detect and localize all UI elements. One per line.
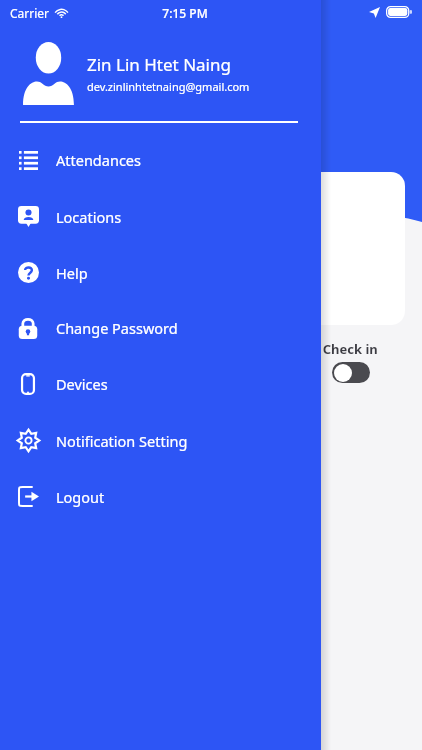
button[interactable]: Logout — [0, 468, 321, 524]
staticText: Notification Setting — [56, 431, 188, 451]
staticText: Zin Lin Htet Naing — [87, 53, 231, 76]
staticText: Help — [56, 263, 88, 283]
staticText: 7:15 PM — [162, 5, 208, 21]
button[interactable]: Help — [0, 244, 321, 300]
button[interactable] — [214, 172, 405, 325]
staticText: Attendances — [56, 150, 141, 170]
button[interactable]: Devices — [0, 356, 321, 412]
staticText: dev.zinlinhtetnaing@gmail.com — [87, 79, 250, 94]
button[interactable]: Zin Lin Htet Naing — [22, 42, 321, 105]
staticText: Carrier — [10, 5, 50, 21]
staticText: Locations — [56, 207, 122, 227]
button[interactable]: Attendances — [0, 132, 321, 188]
staticText: Change Password — [56, 318, 178, 338]
button[interactable]: Change Password — [0, 300, 321, 356]
button[interactable]: Enable Check in toggle — [332, 362, 370, 383]
staticText: Logout — [56, 487, 105, 507]
staticText: Devices — [56, 374, 108, 394]
staticText: Enable Check in — [276, 340, 378, 358]
button[interactable]: Locations — [0, 188, 321, 244]
button[interactable]: Notification Setting — [0, 412, 321, 468]
